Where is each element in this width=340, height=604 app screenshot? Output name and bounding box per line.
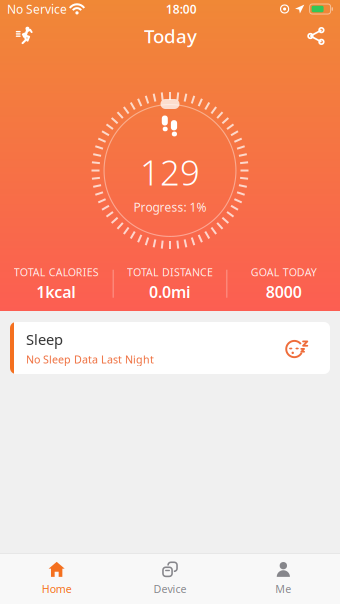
button[interactable]: Sleep (0, 322, 340, 374)
staticText: Device (153, 582, 186, 596)
staticText: Progress: 1% (133, 199, 206, 215)
button[interactable]: Me (227, 554, 340, 604)
staticText: Home (42, 582, 72, 596)
button[interactable]: Activity (5, 20, 44, 51)
staticText: 8000 (266, 281, 302, 302)
button[interactable]: Home (0, 554, 113, 604)
button[interactable]: Share (297, 21, 335, 51)
staticText: TOTAL CALORIES (14, 265, 99, 279)
staticText: TOTAL DISTANCE (127, 265, 213, 279)
staticText: 0.0mi (149, 281, 191, 302)
staticText: GOAL TODAY (251, 265, 317, 279)
staticText: 1kcal (36, 281, 76, 302)
staticText: Today (144, 24, 197, 48)
staticText: 18:00 (166, 1, 197, 17)
button[interactable]: Device (113, 554, 227, 604)
staticText: 129 (140, 149, 200, 195)
staticText: No Sleep Data Last Night (26, 352, 154, 366)
staticText: Sleep (26, 330, 63, 349)
staticText: No Service (7, 1, 67, 17)
staticText: Me (275, 582, 291, 596)
